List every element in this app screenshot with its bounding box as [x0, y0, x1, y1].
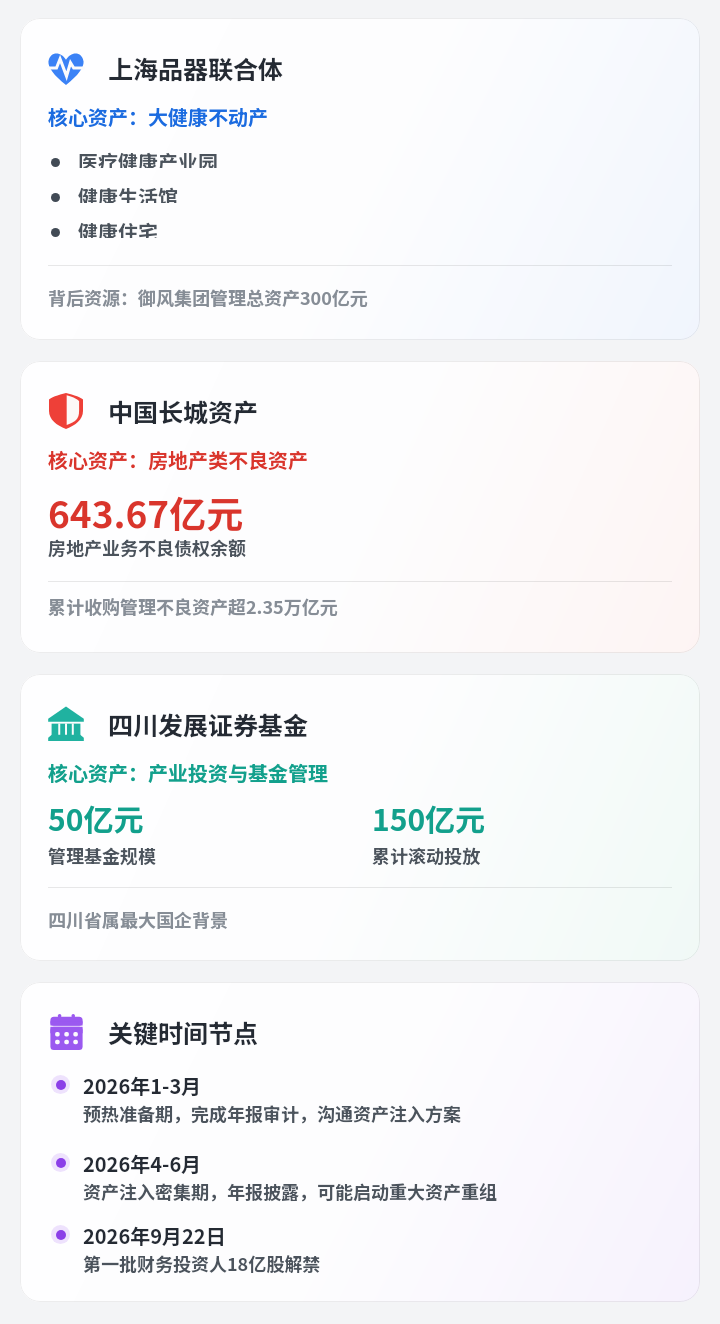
button[interactable]: Fund asset [20, 674, 700, 961]
staticText: 预热准备期，完成年报审计，沟通资产注入方案 [83, 1100, 461, 1126]
staticText: 医疗健康产业园 [78, 147, 218, 168]
other: Health asset [48, 51, 84, 85]
staticText: 上海品器联合体 [108, 50, 284, 86]
staticText: 核心资产：房地产类不良资产 [48, 445, 308, 474]
staticText: 第一批财务投资人18亿股解禁 [83, 1250, 321, 1276]
button[interactable]: Health asset [20, 18, 700, 340]
button[interactable]: Key dates [20, 982, 700, 1302]
staticText: 资产注入密集期，年报披露，可能启动重大资产重组 [83, 1178, 497, 1204]
staticText: 管理基金规模 [48, 842, 156, 868]
staticText: 四川发展证券基金 [108, 706, 309, 742]
staticText: 643.67亿元 [48, 485, 244, 539]
staticText: 累计滚动投放 [372, 842, 480, 868]
staticText: 累计收购管理不良资产超2.35万亿元 [48, 593, 338, 619]
button[interactable]: Security asset [20, 361, 700, 653]
staticText: 关键时间节点 [108, 1014, 259, 1050]
staticText: 50亿元 [48, 796, 144, 839]
staticText: 房地产业务不良债权余额 [48, 534, 246, 560]
other: Fund asset [48, 706, 84, 742]
staticText: 健康住宅 [78, 217, 158, 238]
other: Security asset [49, 393, 83, 429]
staticText: 核心资产：产业投资与基金管理 [48, 758, 328, 787]
staticText: 150亿元 [372, 796, 486, 839]
other: Key dates [49, 1014, 84, 1050]
staticText: 2026年4-6月 [83, 1149, 202, 1178]
staticText: 2026年1-3月 [83, 1071, 202, 1100]
staticText: 中国长城资产 [108, 393, 259, 429]
staticText: 四川省属最大国企背景 [48, 906, 228, 932]
staticText: 核心资产：大健康不动产 [48, 102, 268, 131]
staticText: 2026年9月22日 [83, 1221, 226, 1250]
staticText: 健康生活馆 [78, 182, 178, 203]
staticText: 背后资源：御风集团管理总资产300亿元 [48, 284, 368, 310]
